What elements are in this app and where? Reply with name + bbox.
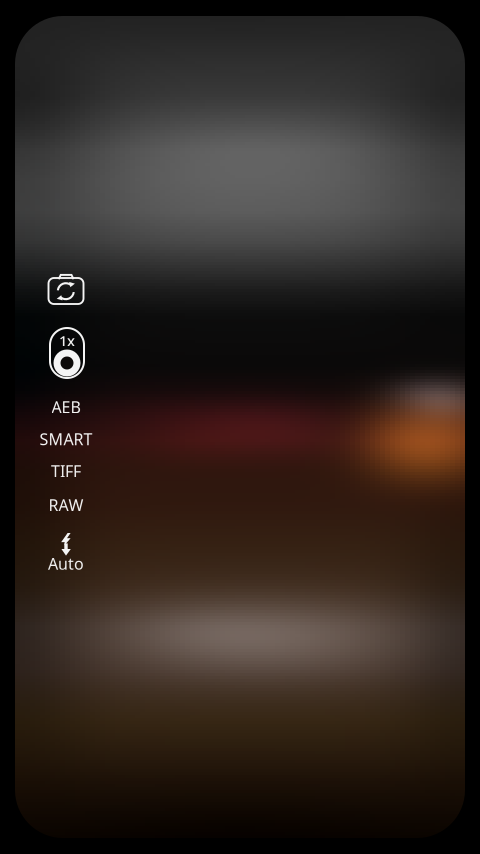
button[interactable]: Zoom 1x <box>29 325 105 381</box>
staticText: AEB <box>51 396 80 418</box>
button[interactable]: Switch Camera <box>28 269 104 309</box>
button[interactable]: TIFF <box>28 458 104 484</box>
staticText: TIFF <box>51 460 81 482</box>
button[interactable]: Flash Auto <box>28 533 104 577</box>
staticText: 1x <box>59 331 75 350</box>
staticText: RAW <box>48 494 83 516</box>
staticText: SMART <box>39 428 92 450</box>
button[interactable]: SMART <box>28 426 104 452</box>
button[interactable]: AEB <box>28 394 104 420</box>
button[interactable]: RAW <box>28 492 104 518</box>
staticText: Auto <box>48 553 84 574</box>
